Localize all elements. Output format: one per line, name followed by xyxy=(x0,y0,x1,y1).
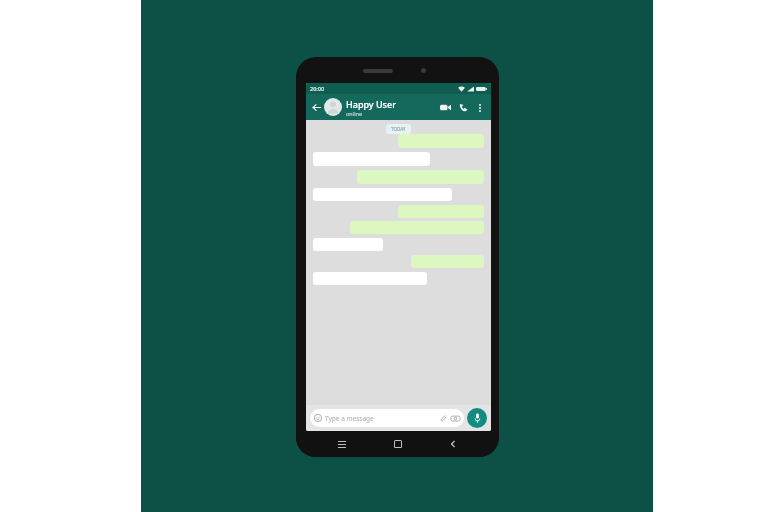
button[interactable]: Recent apps xyxy=(332,434,352,454)
staticText: TODAY xyxy=(391,126,406,132)
button[interactable]: Emoji xyxy=(310,409,464,427)
button[interactable]: Back xyxy=(310,101,323,114)
staticText: 20:00 xyxy=(310,85,325,92)
staticText: Type a message xyxy=(325,414,374,423)
button[interactable]: Back xyxy=(443,434,463,454)
other: Camera xyxy=(451,415,460,422)
button[interactable]: Contact photo xyxy=(324,98,342,116)
button[interactable]: Voice call xyxy=(456,100,471,115)
staticText: Happy User xyxy=(346,98,396,110)
button[interactable]: Video call xyxy=(438,100,453,115)
staticText: online xyxy=(346,110,363,117)
button[interactable]: Happy User xyxy=(346,98,438,117)
other: Emoji xyxy=(314,414,322,422)
button[interactable]: Record voice message xyxy=(467,408,487,428)
button[interactable]: Home xyxy=(388,434,408,454)
button[interactable]: More options xyxy=(473,101,486,114)
other: Attach xyxy=(439,414,447,422)
